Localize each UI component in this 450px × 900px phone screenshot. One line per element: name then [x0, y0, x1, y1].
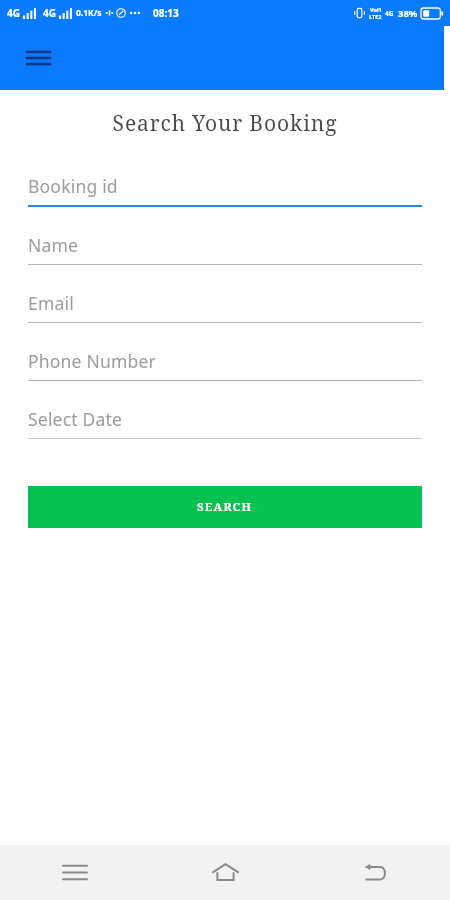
staticText: 38%	[398, 7, 418, 20]
button[interactable]: Back	[300, 845, 450, 900]
button[interactable]: Select Date	[28, 407, 422, 439]
staticText: Vol1	[370, 6, 382, 13]
button[interactable]: Email	[28, 291, 422, 323]
staticText: 08:13	[153, 6, 179, 20]
staticText: 0.1K/s	[76, 7, 102, 19]
button[interactable]: Home	[150, 845, 300, 900]
button[interactable]: Booking id	[28, 174, 422, 207]
staticText: 4G	[7, 6, 20, 20]
staticText: Email	[28, 291, 74, 315]
button[interactable]: Open navigation menu	[18, 38, 58, 78]
staticText: Booking id	[28, 174, 118, 198]
staticText: LTE2	[369, 13, 382, 20]
staticText: 4G	[385, 9, 394, 18]
button[interactable]: Recent apps	[0, 845, 150, 900]
button[interactable]: SEARCH	[28, 486, 422, 528]
button[interactable]: Name	[28, 233, 422, 265]
staticText: Select Date	[28, 407, 123, 431]
staticText: SEARCH	[197, 499, 253, 515]
staticText: Search Your Booking	[0, 109, 450, 138]
staticText: Name	[28, 233, 79, 257]
button[interactable]: Phone Number	[28, 349, 422, 381]
staticText: 4G	[43, 6, 56, 20]
staticText: Phone Number	[28, 349, 156, 373]
